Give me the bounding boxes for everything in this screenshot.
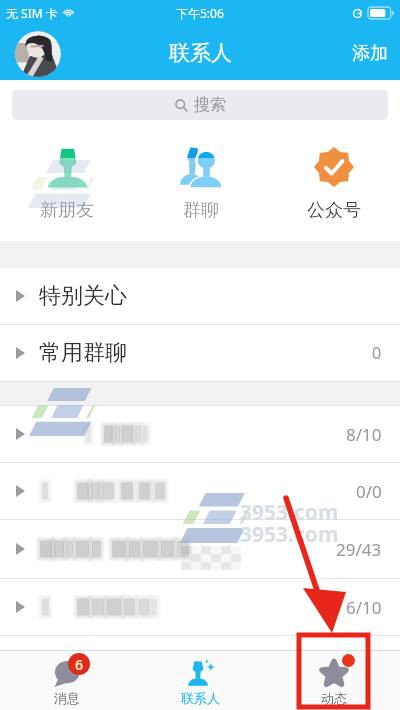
staticText: 3953.com [240, 498, 339, 527]
staticText: 添加 [352, 42, 388, 65]
button[interactable]: 搜索 [12, 90, 388, 120]
button[interactable]: 6/10 [0, 579, 400, 635]
button[interactable]: 新朋友 [0, 130, 134, 222]
button[interactable]: 常用群聊 [0, 325, 400, 381]
staticText: 搜索 [194, 95, 226, 115]
staticText: 无 SIM 卡 [6, 5, 58, 21]
staticText: 公众号 [307, 199, 361, 222]
button[interactable]: 29/43 [0, 520, 400, 578]
staticText: 8/10 [346, 423, 382, 446]
staticText: 0/0 [356, 480, 382, 503]
staticText: 29/43 [336, 538, 382, 561]
staticText: 联系人 [181, 690, 220, 706]
staticText: 消息 [54, 690, 80, 706]
button[interactable]: 特别关心 [0, 268, 400, 324]
button[interactable]: 6 [0, 651, 134, 706]
button[interactable]: 动态 [267, 651, 400, 706]
staticText: 3953.com [240, 520, 339, 549]
staticText: 群聊 [183, 199, 219, 222]
button[interactable]: 联系人 [134, 651, 267, 706]
staticText: 联系人 [169, 40, 232, 66]
staticText: 常用群聊 [39, 339, 127, 367]
staticText: 0 [372, 342, 382, 364]
button[interactable]: 公众号 [267, 130, 400, 222]
button[interactable]: 0/0 [0, 463, 400, 519]
button[interactable]: Profile avatar [15, 31, 61, 77]
staticText: 动态 [321, 690, 347, 706]
staticText: 下午5:06 [176, 5, 224, 21]
button[interactable]: 8/10 [0, 406, 400, 462]
button[interactable]: 添加 [338, 32, 400, 75]
button[interactable]: 群聊 [134, 130, 267, 222]
staticText: 特别关心 [39, 282, 127, 310]
staticText: 6/10 [346, 596, 382, 619]
staticText: 6 [75, 655, 84, 674]
staticText: 新朋友 [40, 199, 94, 222]
